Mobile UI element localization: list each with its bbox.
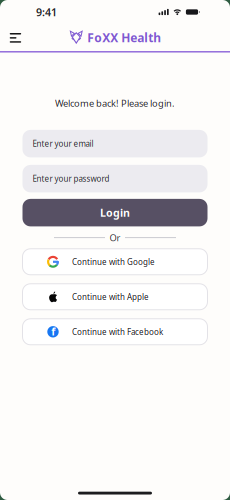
button[interactable]: Menu — [0, 24, 21, 43]
staticText: Login — [100, 206, 130, 220]
staticText: Or — [109, 231, 120, 244]
staticText: Enter your email — [32, 138, 93, 149]
staticText: 9:41 — [36, 5, 57, 19]
staticText: Continue with Google — [72, 256, 155, 267]
button[interactable]: f — [22, 319, 207, 345]
staticText: Enter your password — [32, 173, 109, 184]
button[interactable]: Login — [22, 199, 207, 226]
button[interactable]: Continue with Google — [22, 249, 207, 275]
staticText: f — [51, 324, 55, 338]
staticText: Continue with Apple — [72, 291, 149, 302]
staticText: FoXX Health — [87, 29, 161, 45]
staticText: Welcome back! Please login. — [55, 97, 175, 109]
staticText: Continue with Facebook — [72, 326, 163, 337]
button[interactable]: Continue with Apple — [22, 284, 207, 310]
